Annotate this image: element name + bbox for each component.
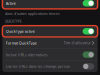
button[interactable]: Inclure URLs alternatives xyxy=(2,49,98,60)
staticText: QuickType activé xyxy=(6,29,35,34)
staticText: Inclure URLs alternatives xyxy=(6,52,48,57)
staticText: dans d'autres applications tierces xyxy=(5,12,60,16)
button[interactable]: QuickType activé xyxy=(2,26,98,37)
button[interactable]: Activé xyxy=(2,0,98,9)
staticText: Format QuickType xyxy=(6,40,37,45)
staticText: Lire les URLs dans les champs person xyxy=(6,64,70,69)
staticText: QUICKTYPE xyxy=(5,19,22,24)
staticText: Titre d'utilisateur xyxy=(64,41,91,45)
button[interactable]: Format QuickType xyxy=(2,37,98,49)
button[interactable]: Lire les URLs dans les champs person xyxy=(2,61,98,72)
staticText: Activé xyxy=(6,1,16,6)
